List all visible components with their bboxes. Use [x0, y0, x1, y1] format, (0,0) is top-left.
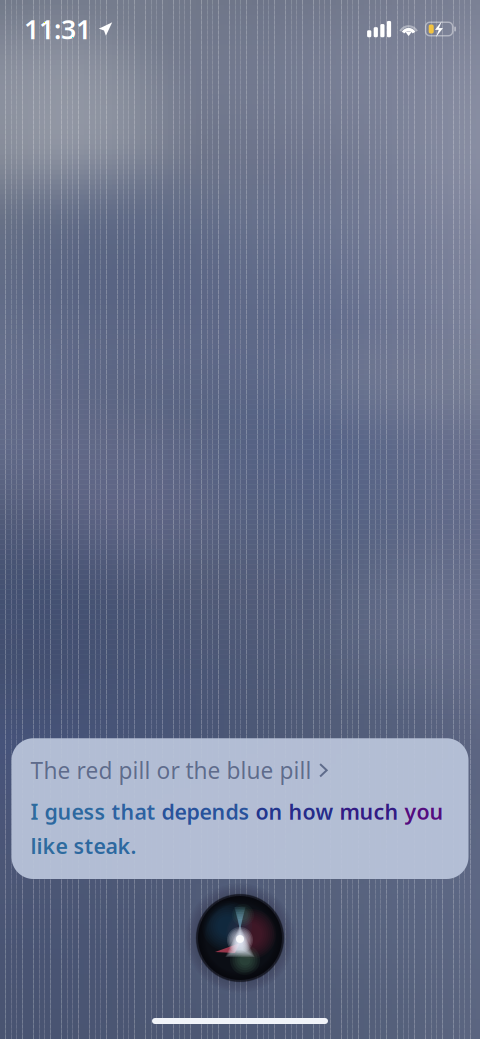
- staticText: steak.: [73, 832, 136, 860]
- button[interactable]: The red pill or the blue pill: [30, 755, 468, 785]
- staticText: I: [30, 797, 44, 826]
- staticText: guess: [44, 797, 111, 826]
- staticText: on: [255, 797, 288, 826]
- staticText: you: [404, 797, 443, 826]
- staticText: The red pill or the blue pill: [30, 755, 311, 785]
- staticText: how: [288, 797, 339, 826]
- staticText: 11:31: [24, 11, 91, 47]
- button[interactable]: Siri: [198, 896, 282, 980]
- staticText: like: [30, 832, 73, 860]
- staticText: depends: [161, 797, 255, 826]
- staticText: much: [339, 797, 404, 826]
- staticText: that: [111, 797, 161, 826]
